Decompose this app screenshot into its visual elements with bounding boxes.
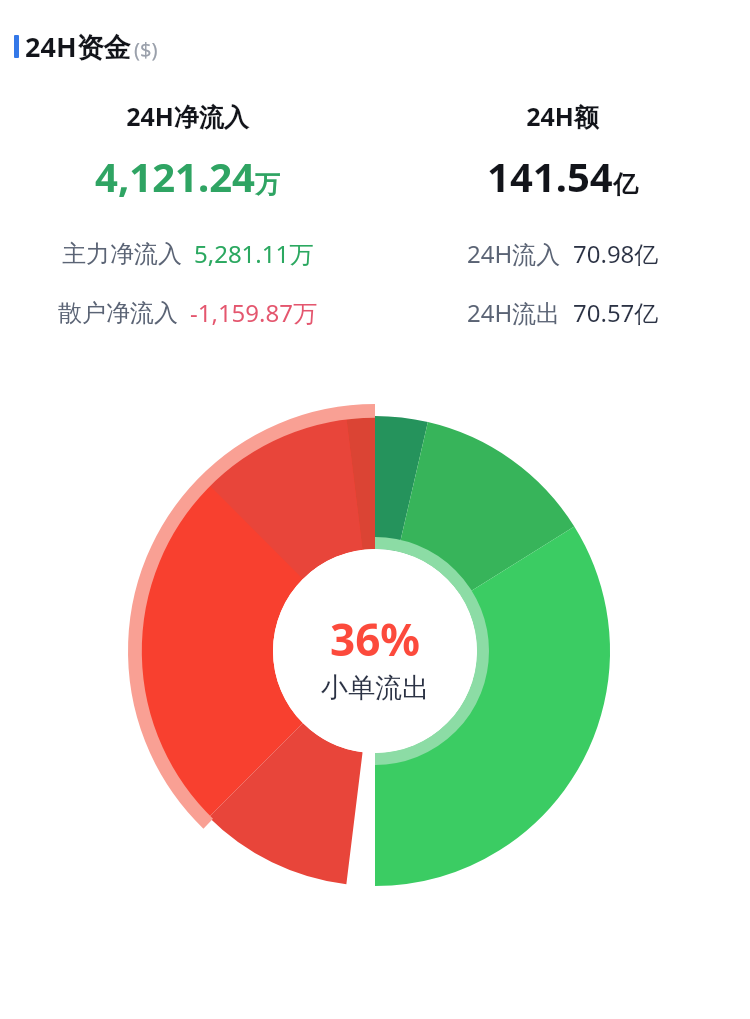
button[interactable]: 24H资金 [14, 28, 750, 65]
staticText: 36% [330, 609, 421, 669]
button[interactable]: 散户净流入 [58, 296, 317, 329]
staticText: 70.57亿 [573, 296, 659, 329]
button[interactable]: 24H额 [375, 99, 750, 203]
staticText: 24H资金 [25, 28, 131, 65]
button[interactable]: 资金流向占比圆环图 [125, 401, 625, 901]
staticText: 141.54 [487, 149, 613, 203]
staticText: 万 [255, 169, 280, 200]
staticText: 24H流出 [467, 296, 561, 329]
staticText: 主力净流入 [62, 239, 182, 269]
staticText: ($) [134, 36, 158, 63]
button[interactable]: 24H流出 [467, 296, 659, 329]
staticText: 4,121.24 [95, 149, 255, 203]
staticText: 24H流入 [467, 237, 561, 270]
staticText: 小单流出 [321, 671, 429, 705]
staticText: -1,159.87万 [190, 296, 317, 329]
staticText: 24H额 [526, 99, 599, 133]
staticText: 散户净流入 [58, 298, 178, 328]
button[interactable]: 24H净流入 [0, 99, 375, 203]
button[interactable]: 主力净流入 [62, 237, 314, 270]
staticText: 70.98亿 [573, 237, 659, 270]
button[interactable]: 24H流入 [467, 237, 659, 270]
staticText: 5,281.11万 [194, 237, 314, 270]
staticText: 24H净流入 [126, 99, 249, 133]
staticText: 亿 [613, 169, 638, 200]
